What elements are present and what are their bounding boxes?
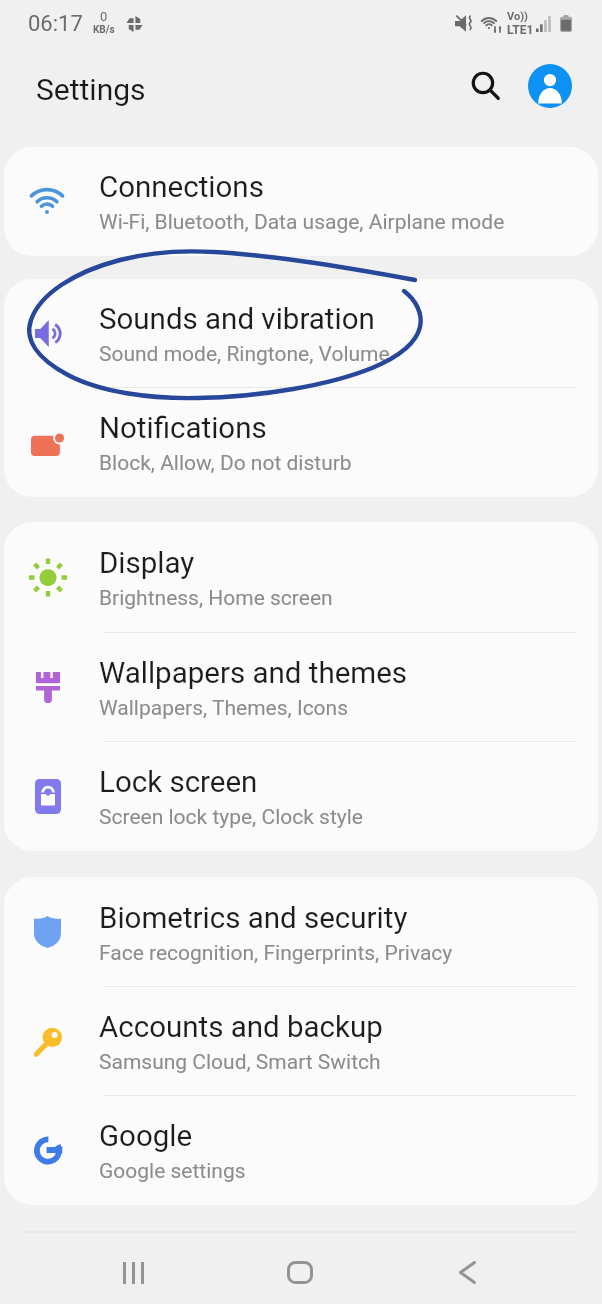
button[interactable]: Search (460, 60, 512, 112)
staticText: Sounds and vibration (99, 302, 375, 337)
button[interactable]: Biometrics and security (4, 877, 598, 987)
staticText: Vo)) (507, 10, 528, 23)
staticText: Google settings (99, 1159, 246, 1184)
staticText: Settings (36, 72, 146, 107)
staticText: Accounts and backup (99, 1010, 383, 1045)
staticText: Wi-Fi, Bluetooth, Data usage, Airplane m… (99, 210, 505, 235)
staticText: Lock screen (99, 765, 258, 800)
staticText: Samsung Cloud, Smart Switch (99, 1050, 381, 1075)
button[interactable]: Back (431, 1237, 503, 1304)
button[interactable]: Account (524, 60, 576, 112)
staticText: Wallpapers, Themes, Icons (99, 696, 349, 721)
staticText: LTE1 (507, 23, 534, 37)
staticText: Display (99, 546, 195, 581)
button[interactable]: Accounts and backup (4, 987, 598, 1096)
staticText: Brightness, Home screen (99, 586, 333, 611)
button[interactable]: Google (4, 1096, 598, 1205)
staticText: Block, Allow, Do not disturb (99, 451, 352, 476)
staticText: Notifications (99, 411, 267, 446)
staticText: Face recognition, Fingerprints, Privacy (99, 941, 453, 966)
staticText: 06:17 (28, 11, 83, 37)
button[interactable]: Connections (4, 147, 598, 256)
button[interactable]: Display (4, 522, 598, 633)
staticText: KB/s (93, 24, 115, 36)
staticText: Google (99, 1119, 193, 1154)
staticText: Wallpapers and themes (99, 656, 408, 691)
staticText: 0 (100, 9, 108, 24)
button[interactable]: Recent apps (97, 1237, 169, 1304)
button[interactable]: Lock screen (4, 742, 598, 851)
button[interactable]: Wallpapers and themes (4, 633, 598, 742)
button[interactable]: Sounds and vibration (4, 279, 598, 388)
staticText: Sound mode, Ringtone, Volume (99, 342, 390, 367)
staticText: Screen lock type, Clock style (99, 805, 363, 830)
staticText: Biometrics and security (99, 901, 408, 936)
button[interactable]: Notifications (4, 388, 598, 497)
button[interactable]: Home (264, 1237, 336, 1304)
staticText: Connections (99, 170, 264, 205)
